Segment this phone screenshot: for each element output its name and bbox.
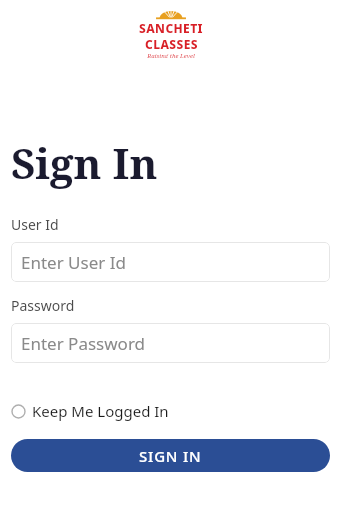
staticText: Enter User Id <box>21 251 126 274</box>
staticText: Enter Password <box>21 332 146 355</box>
button[interactable]: Keep Me Logged In <box>8 398 172 424</box>
staticText: Raising the Level <box>147 52 195 58</box>
staticText: User Id <box>11 215 59 234</box>
staticText: CLASSES <box>145 36 198 52</box>
button[interactable]: SIGN IN <box>11 439 330 472</box>
button[interactable]: Enter User Id <box>11 242 330 282</box>
staticText: Sign In <box>11 134 158 191</box>
staticText: SIGN IN <box>139 446 202 466</box>
staticText: Password <box>11 296 75 315</box>
staticText: Keep Me Logged In <box>32 401 169 421</box>
staticText: SANCHETI <box>139 20 203 36</box>
button[interactable]: Enter Password <box>11 323 330 363</box>
